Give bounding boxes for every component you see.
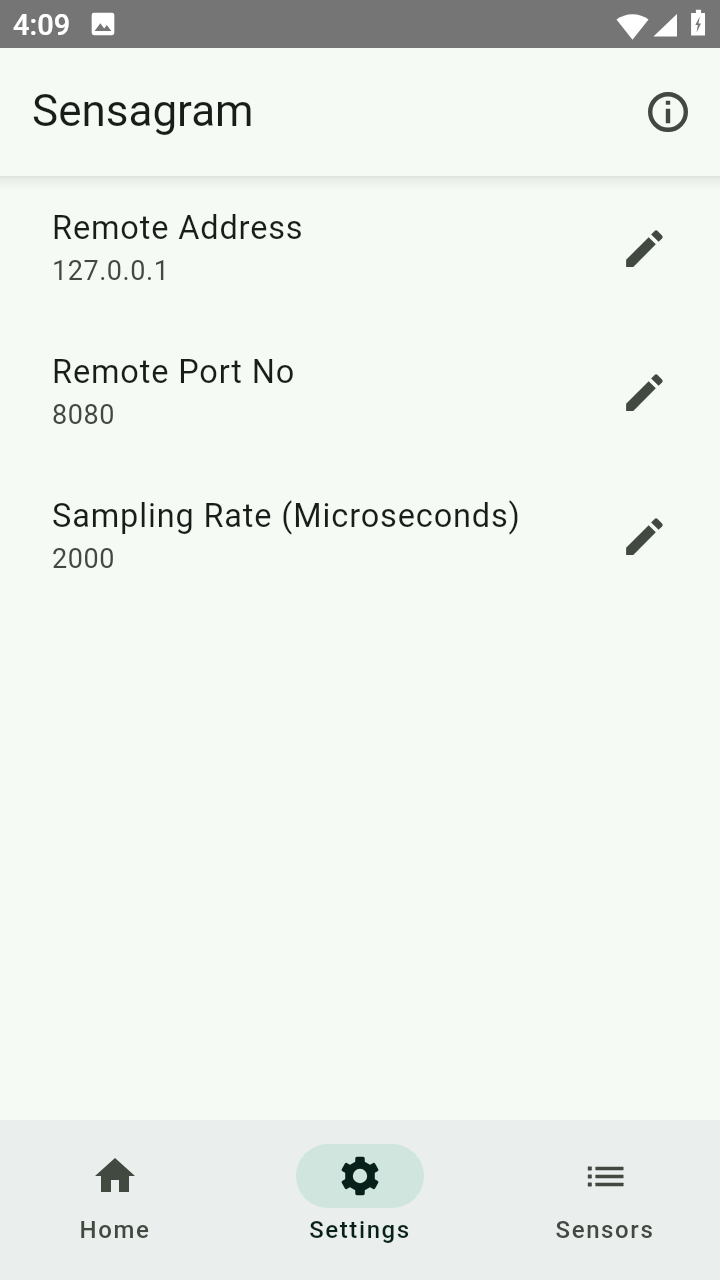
button[interactable]: Sampling Rate (Microseconds) bbox=[0, 468, 596, 612]
button[interactable]: Edit Sampling Rate (Microseconds) bbox=[596, 488, 692, 584]
button[interactable]: Settings bbox=[280, 1132, 440, 1268]
staticText: Sampling Rate (Microseconds) bbox=[52, 497, 521, 535]
button[interactable]: Sensors bbox=[525, 1132, 685, 1268]
staticText: 2000 bbox=[52, 543, 115, 575]
button[interactable]: Edit Remote Port No bbox=[596, 344, 692, 440]
button[interactable]: Edit Remote Address bbox=[596, 200, 692, 296]
button[interactable]: Remote Port No bbox=[0, 324, 596, 468]
staticText: 127.0.0.1 bbox=[52, 255, 170, 287]
staticText: Home bbox=[35, 1216, 195, 1244]
button[interactable]: Home bbox=[35, 1132, 195, 1268]
staticText: Settings bbox=[280, 1216, 440, 1244]
staticText: 4:09 bbox=[13, 8, 71, 42]
staticText: 8080 bbox=[52, 399, 115, 431]
button[interactable]: About bbox=[620, 64, 716, 160]
staticText: Sensors bbox=[525, 1216, 685, 1244]
staticText: Sensagram bbox=[32, 85, 254, 137]
button[interactable]: Remote Address bbox=[0, 180, 596, 324]
staticText: Remote Address bbox=[52, 209, 304, 247]
staticText: Remote Port No bbox=[52, 353, 296, 391]
